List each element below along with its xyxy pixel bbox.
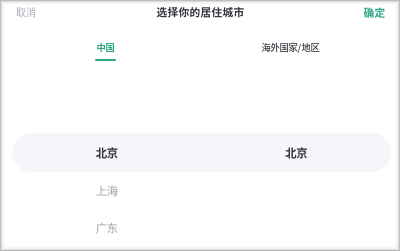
button[interactable]: 上海 bbox=[12, 171, 391, 210]
staticText: 中国 bbox=[96, 40, 114, 54]
staticText: 上海 bbox=[96, 182, 118, 199]
button[interactable]: 海外国家/地区 bbox=[215, 36, 365, 66]
staticText: 确定 bbox=[363, 4, 385, 20]
staticText: 北京 bbox=[96, 144, 118, 161]
staticText: 广东 bbox=[96, 219, 118, 236]
staticText: 取消 bbox=[16, 5, 36, 19]
button[interactable]: 取消 bbox=[0, 0, 52, 24]
button[interactable]: 中国 bbox=[30, 36, 180, 66]
staticText: 北京 bbox=[285, 144, 307, 161]
staticText: 海外国家/地区 bbox=[261, 40, 319, 54]
staticText: 选择你的居住城市 bbox=[156, 4, 244, 19]
button[interactable]: 北京 bbox=[12, 133, 391, 172]
button[interactable]: 确定 bbox=[348, 0, 400, 24]
button[interactable]: 广东 bbox=[12, 208, 391, 247]
